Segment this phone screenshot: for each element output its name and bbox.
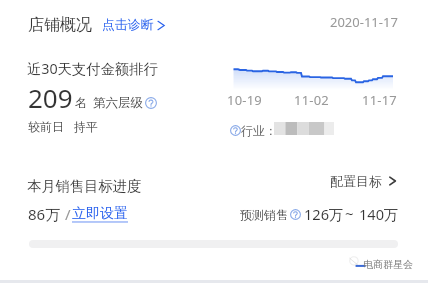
staticText: 行业： — [241, 123, 277, 138]
staticText: / — [65, 204, 71, 224]
staticText: 第六层级 — [93, 95, 143, 111]
staticText: 11-17 — [362, 91, 397, 109]
staticText: 电商群星会 — [363, 258, 413, 271]
button[interactable]: 层级说明 — [145, 97, 157, 109]
staticText: ~ — [345, 203, 354, 223]
staticText: 本月销售目标进度 — [27, 177, 142, 195]
staticText: 近30天支付金额排行 — [27, 59, 158, 79]
staticText: 较前日 — [28, 119, 64, 134]
staticText: 209 — [28, 80, 73, 115]
staticText: 点击诊断 — [102, 17, 154, 33]
button[interactable]: 立即设置 — [72, 205, 128, 223]
staticText: 10-19 — [227, 91, 262, 109]
button[interactable]: 配置目标 — [330, 173, 397, 189]
staticText: 11-02 — [294, 91, 329, 109]
staticText: 140万 — [359, 204, 399, 224]
staticText: 配置目标 — [330, 173, 382, 189]
staticText: 店铺概况 — [28, 15, 92, 35]
staticText: 2020-11-17 — [330, 13, 398, 31]
button[interactable]: 预测销售说明 — [290, 209, 301, 220]
staticText: 86万 — [28, 204, 61, 224]
staticText: 名 — [75, 95, 88, 111]
button[interactable]: 点击诊断 — [102, 17, 166, 33]
staticText: 预测销售 — [240, 207, 288, 222]
staticText: 126万 — [304, 204, 344, 224]
staticText: 持平 — [74, 119, 98, 134]
